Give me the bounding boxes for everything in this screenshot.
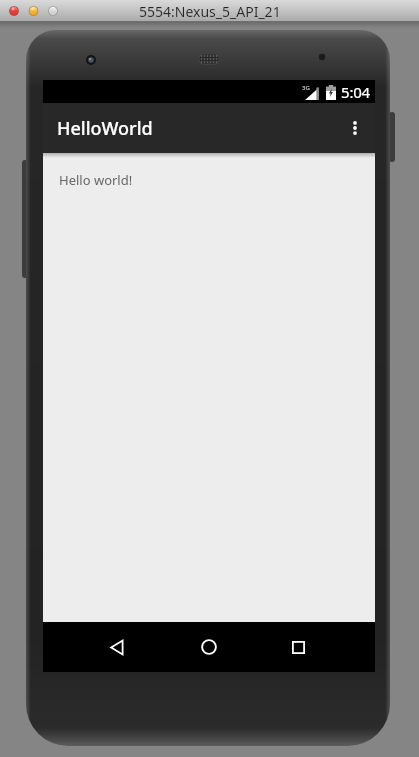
staticText: 3G xyxy=(302,84,310,92)
button[interactable] xyxy=(335,103,375,153)
staticText: 5554:Nexus_5_API_21 xyxy=(139,2,281,21)
button[interactable] xyxy=(174,622,244,672)
staticText: 5:04 xyxy=(341,82,370,102)
button[interactable] xyxy=(263,622,333,672)
button[interactable] xyxy=(82,622,152,672)
staticText: Hello world! xyxy=(59,171,133,189)
staticText: HelloWorld xyxy=(57,116,153,141)
